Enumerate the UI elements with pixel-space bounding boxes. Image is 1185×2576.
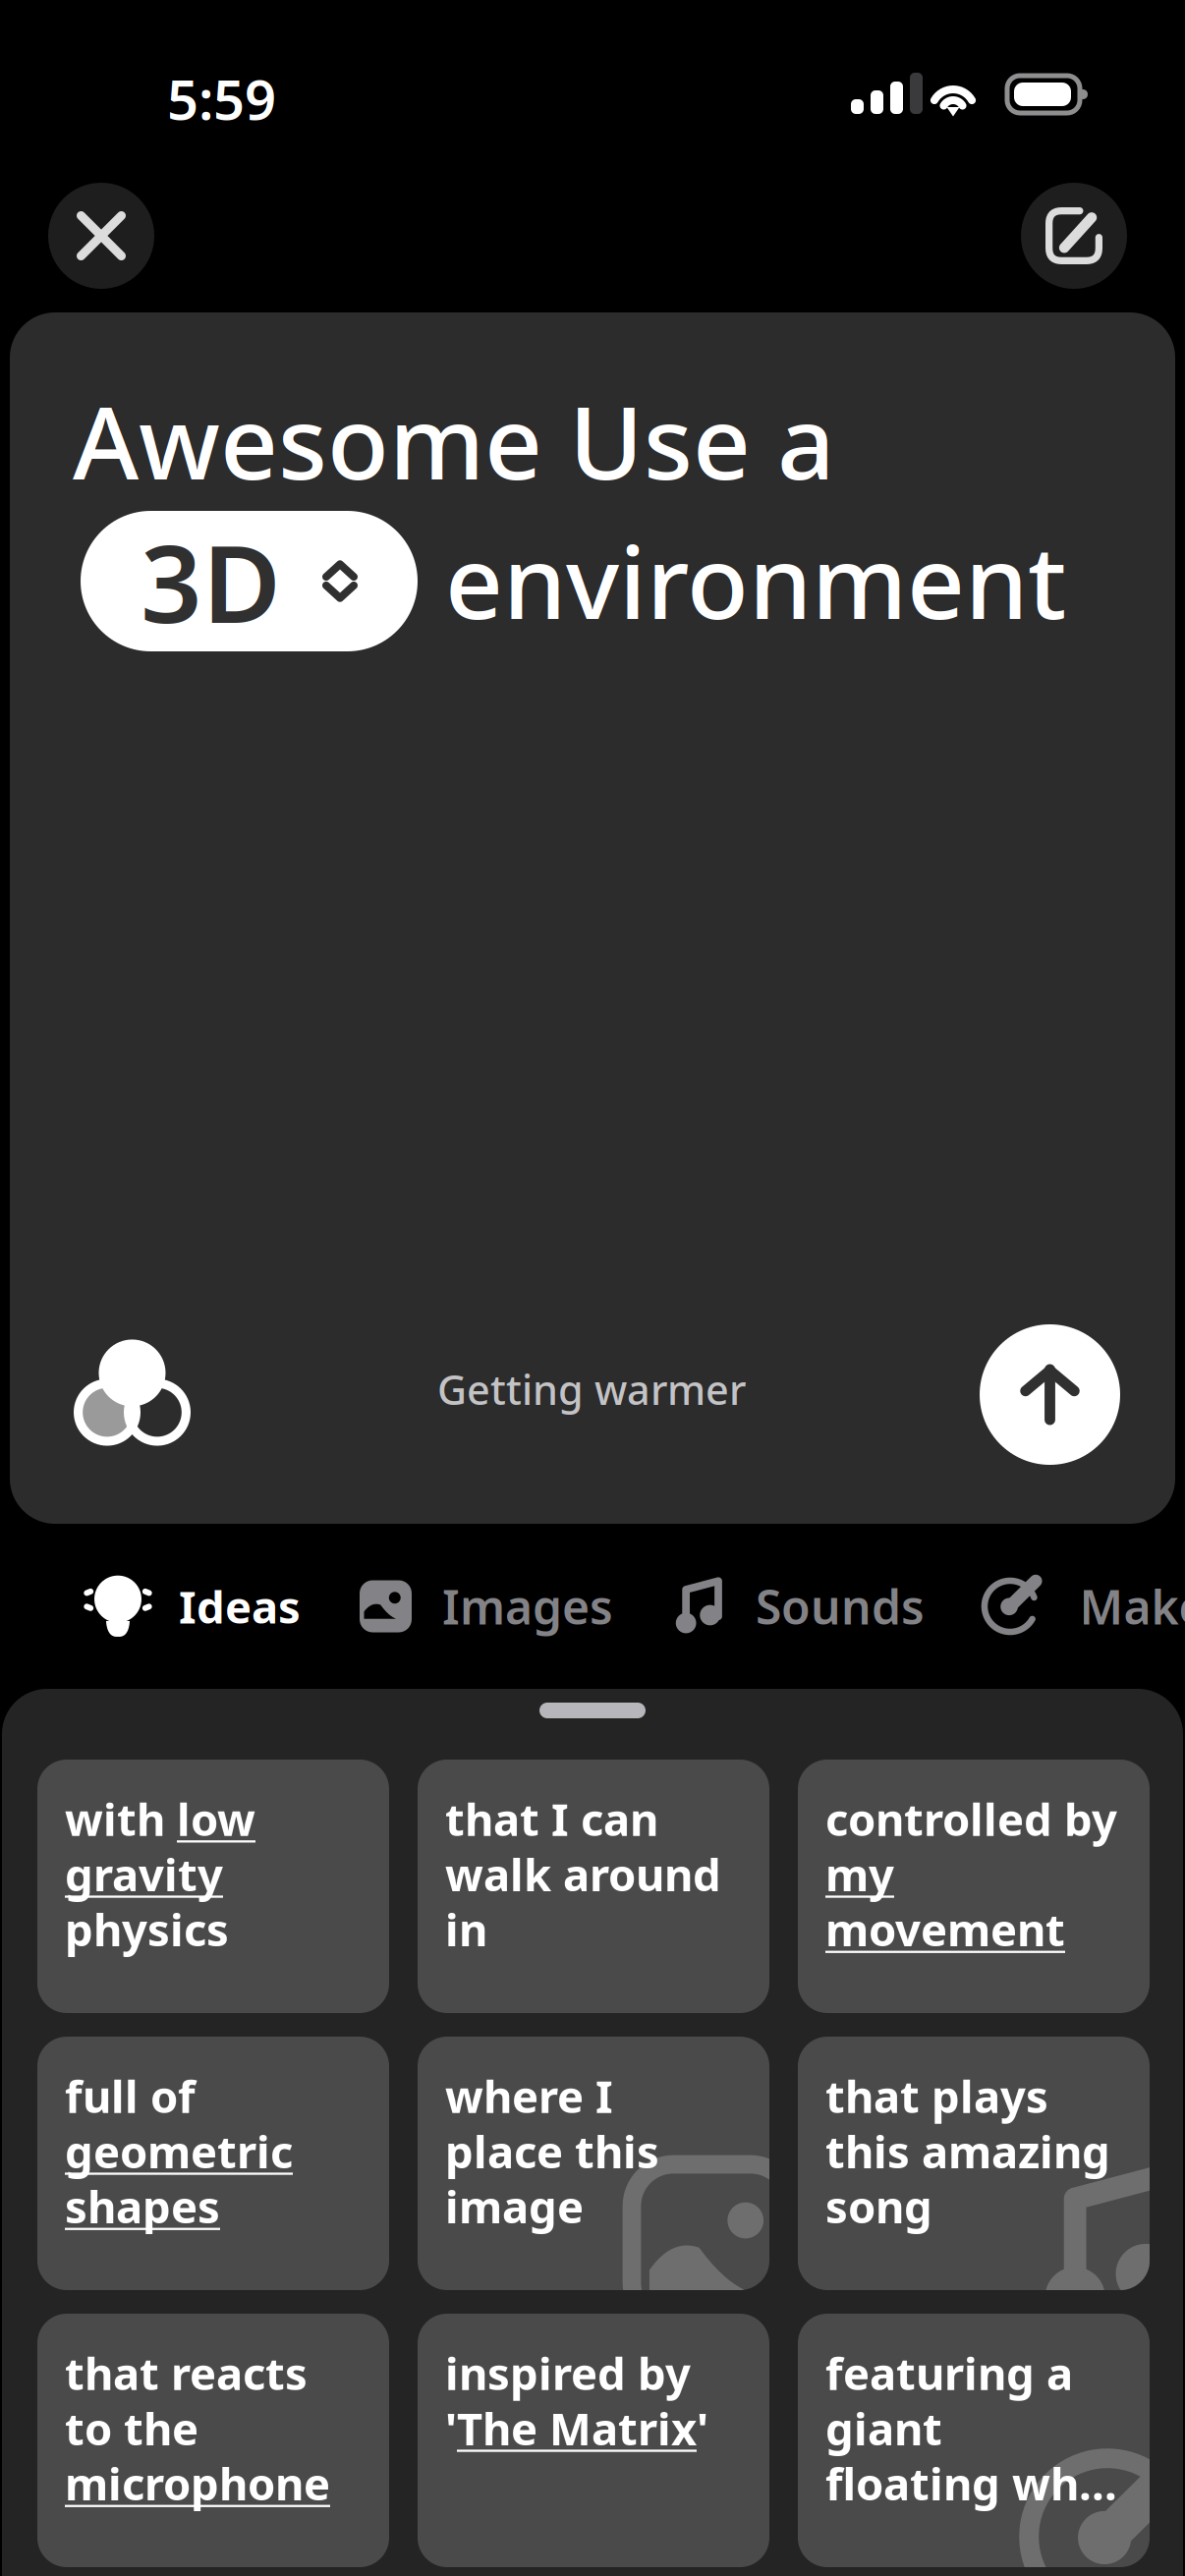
button[interactable]: controlled by	[798, 1760, 1150, 2013]
button[interactable]: Submit	[980, 1324, 1120, 1465]
button[interactable]: Make	[980, 1572, 1185, 1641]
staticText: shapes	[65, 2177, 220, 2236]
button[interactable]: inspired by	[418, 2314, 769, 2567]
staticText: my	[825, 1844, 894, 1903]
staticText: movement	[825, 1899, 1065, 1959]
button[interactable]: Sounds	[666, 1572, 928, 1641]
staticText: giant	[825, 2398, 942, 2458]
staticText: that I can	[445, 1789, 658, 1848]
staticText: place this	[445, 2121, 659, 2180]
staticText: Awesome Use a	[73, 373, 835, 507]
button[interactable]: Styles	[74, 1339, 191, 1446]
staticText: 5:59	[167, 62, 276, 135]
staticText: featuring a	[825, 2343, 1073, 2402]
staticText: floating wh...	[825, 2454, 1117, 2513]
staticText: full of	[65, 2066, 196, 2125]
button[interactable]: that reacts	[37, 2314, 389, 2567]
staticText: microphone	[65, 2454, 330, 2513]
staticText: in	[445, 1899, 487, 1959]
button[interactable]: with low	[37, 1760, 389, 2013]
staticText: that reacts	[65, 2343, 308, 2402]
staticText: that plays	[825, 2066, 1048, 2125]
button[interactable]: full of	[37, 2037, 389, 2290]
staticText: Sounds	[756, 1575, 925, 1638]
staticText: with low	[65, 1789, 255, 1848]
staticText: Make	[1079, 1575, 1185, 1638]
staticText: Getting warmer	[437, 1362, 746, 1416]
button[interactable]: that plays	[798, 2037, 1150, 2290]
button[interactable]: where I	[418, 2037, 769, 2290]
staticText: environment	[445, 513, 1066, 647]
staticText: song	[825, 2177, 932, 2236]
staticText: 'The Matrix'	[445, 2398, 708, 2458]
button[interactable]: New prompt	[1021, 183, 1127, 289]
staticText: Ideas	[179, 1577, 301, 1636]
staticText: physics	[65, 1899, 229, 1959]
staticText: geometric	[65, 2121, 293, 2180]
button[interactable]: Close	[48, 183, 154, 289]
staticText: walk around	[445, 1844, 721, 1903]
staticText: image	[445, 2177, 584, 2236]
button[interactable]: Ideas	[84, 1572, 301, 1641]
staticText: gravity	[65, 1844, 223, 1903]
staticText: this amazing	[825, 2121, 1110, 2180]
staticText: controlled by	[825, 1789, 1117, 1848]
button[interactable]: Images	[360, 1572, 612, 1641]
button[interactable]: 3D	[81, 511, 418, 651]
staticText: Images	[442, 1575, 613, 1638]
staticText: where I	[445, 2066, 613, 2125]
button[interactable]: featuring a	[798, 2314, 1150, 2567]
staticText: to the	[65, 2398, 198, 2458]
button[interactable]: that I can	[418, 1760, 769, 2013]
staticText: inspired by	[445, 2343, 691, 2402]
staticText: 3D	[141, 510, 281, 652]
